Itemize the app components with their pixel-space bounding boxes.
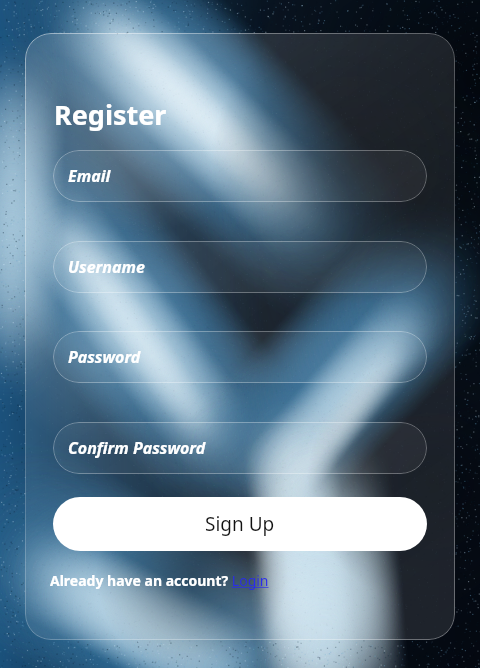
staticText: Register bbox=[54, 96, 167, 133]
staticText: Sign Up bbox=[205, 511, 275, 537]
button[interactable]: Confirm Password bbox=[53, 422, 427, 474]
staticText: Password bbox=[68, 346, 141, 368]
staticText: Email bbox=[68, 165, 111, 187]
button[interactable]: Username bbox=[53, 241, 427, 293]
staticText: Username bbox=[68, 256, 145, 278]
staticText: Confirm Password bbox=[68, 437, 206, 459]
button[interactable]: Sign Up bbox=[53, 497, 427, 551]
staticText: Already have an account? Login bbox=[50, 571, 269, 590]
button[interactable]: Email bbox=[53, 150, 427, 202]
button[interactable]: Password bbox=[53, 331, 427, 383]
button[interactable]: Already have an account? Login bbox=[50, 568, 269, 592]
